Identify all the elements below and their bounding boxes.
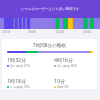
staticText: いつものユーザーよりも良い睡眠です (21, 7, 80, 11)
staticText: 22:00 (2, 30, 11, 34)
staticText: 00:00 (28, 30, 37, 34)
button[interactable]: 10分 (54, 77, 97, 89)
button[interactable]: 1時32分 (7, 56, 54, 68)
staticText: 04:00 (83, 30, 92, 34)
staticText: 4時16分 (54, 56, 74, 63)
staticText: 覚醒 3% (57, 85, 69, 89)
button[interactable]: 1時18分 (7, 77, 54, 89)
staticText: レム睡眠 18% (10, 85, 31, 89)
staticText: 1時18分 (7, 77, 27, 84)
staticText: 深い睡眠 21% (10, 64, 30, 68)
button[interactable]: 4時16分 (54, 56, 97, 68)
staticText: 10分 (54, 77, 66, 84)
staticText: 7時間6分の睡眠 (33, 42, 66, 48)
staticText: 1時32分 (7, 56, 27, 63)
staticText: 浅い睡眠 60% (57, 64, 77, 68)
staticText: 02:00 (56, 30, 65, 34)
